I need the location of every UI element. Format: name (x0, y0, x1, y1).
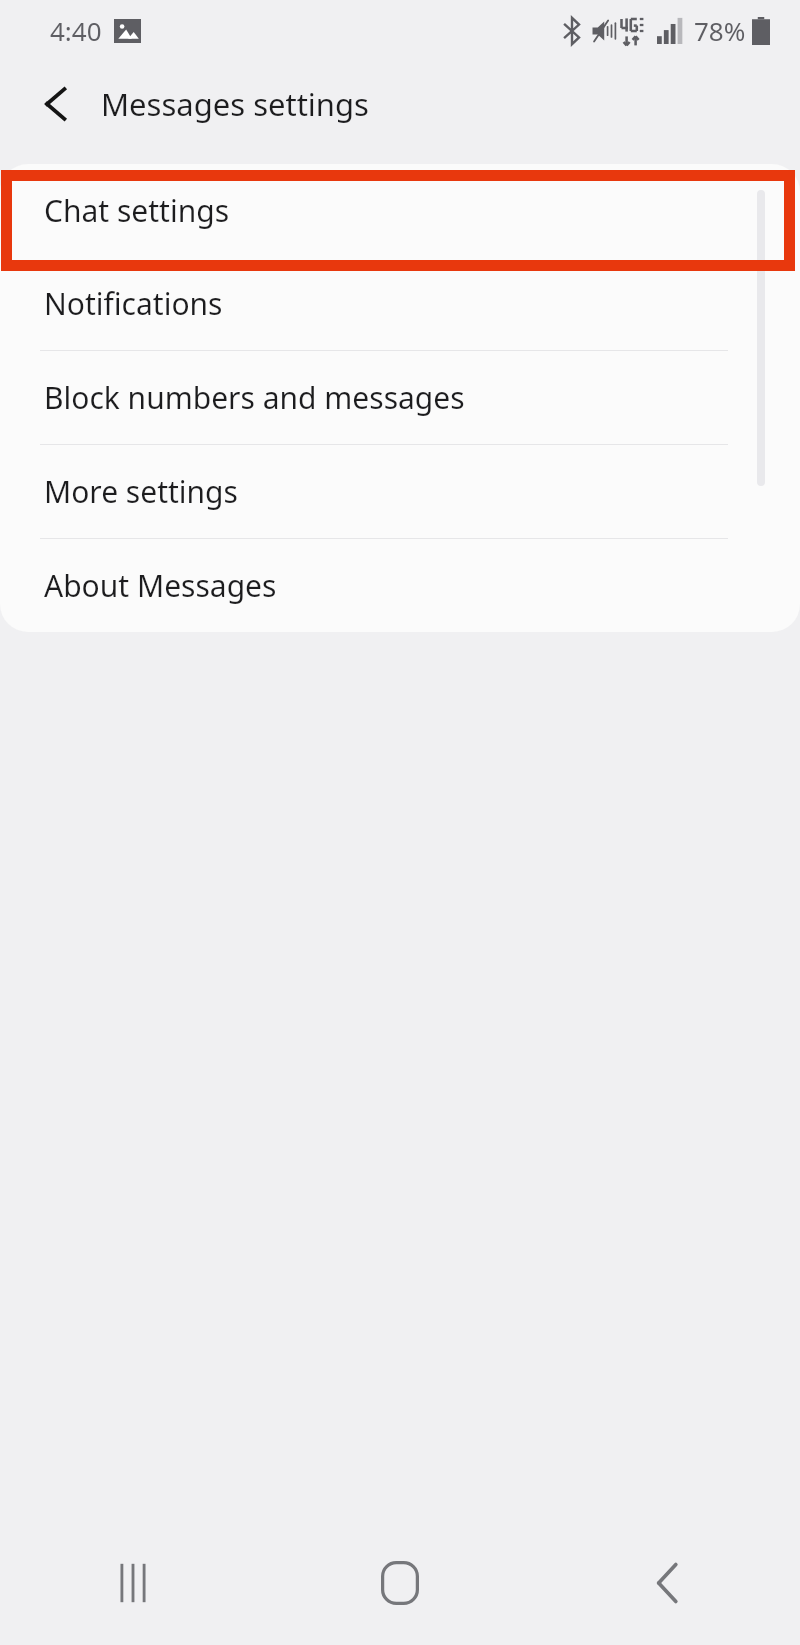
button[interactable]: Chat settings (0, 164, 800, 257)
staticText: Block numbers and messages (44, 377, 465, 418)
button[interactable]: Home (266, 1520, 533, 1645)
staticText: Chat settings (44, 190, 230, 231)
button[interactable]: About Messages (0, 539, 800, 632)
button[interactable]: Back (533, 1520, 800, 1645)
staticText: Notifications (44, 283, 223, 324)
button[interactable]: Notifications (0, 257, 800, 350)
button[interactable]: Navigate up (26, 74, 86, 134)
staticText: More settings (44, 471, 238, 512)
staticText: About Messages (44, 565, 277, 606)
staticText: Messages settings (101, 83, 369, 125)
staticText: 78% (694, 13, 746, 48)
button[interactable]: Recent apps (0, 1520, 266, 1645)
button[interactable]: More settings (0, 445, 800, 538)
staticText: 4:40 (50, 13, 102, 48)
button[interactable]: Block numbers and messages (0, 351, 800, 444)
